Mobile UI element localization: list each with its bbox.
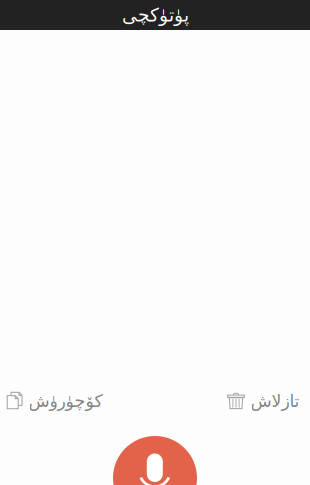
button[interactable]: كۆچۈرۈش [1, 387, 107, 415]
button[interactable]: تازلاش [222, 387, 304, 415]
staticText: كۆچۈرۈش [28, 391, 102, 411]
button[interactable]: Record [113, 436, 197, 485]
staticText: پۈتۈكچى [121, 4, 188, 26]
staticText: تازلاش [250, 391, 299, 411]
